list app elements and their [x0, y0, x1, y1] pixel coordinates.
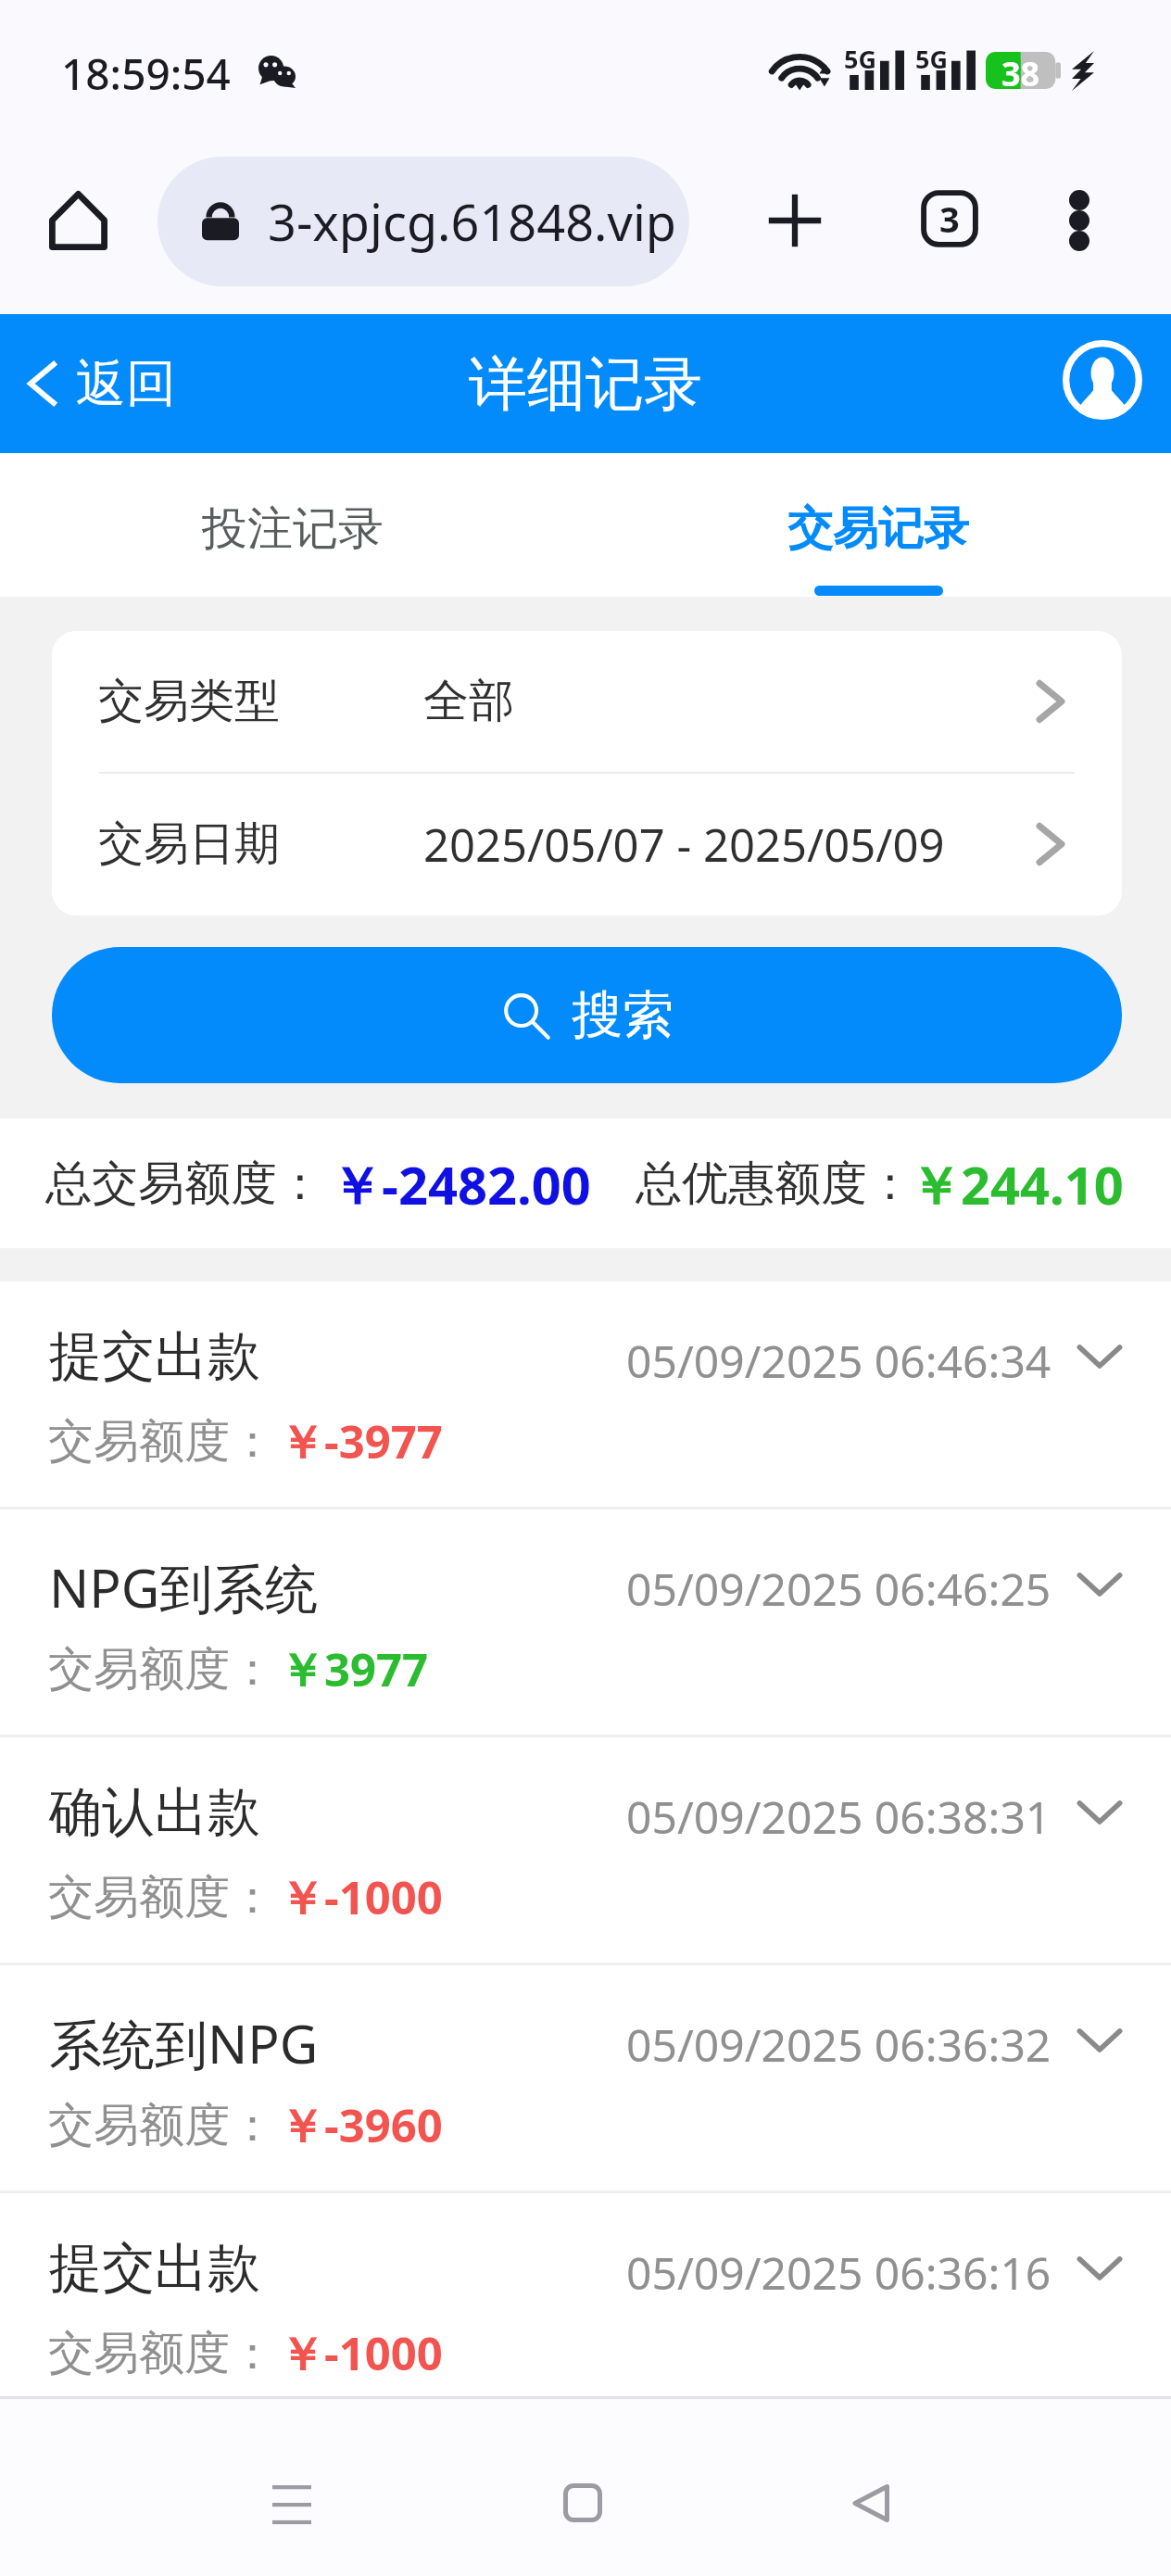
- staticText: NPG到系统: [49, 1551, 319, 1623]
- button[interactable]: 3-xpjcg.61848.vip: [157, 157, 689, 286]
- button[interactable]: Back: [815, 2465, 926, 2541]
- staticText: 交易日期: [98, 815, 280, 873]
- staticText: ￥-3977: [279, 1410, 443, 1472]
- staticText: 交易类型: [98, 673, 280, 730]
- staticText: 2025/05/07 - 2025/05/09: [423, 814, 945, 876]
- staticText: ￥-3960: [279, 2094, 443, 2156]
- staticText: 05/09/2025 06:36:32: [626, 2014, 1051, 2075]
- button[interactable]: 提交出款: [0, 1282, 1171, 1509]
- staticText: 交易额度：: [48, 1641, 275, 1698]
- button[interactable]: Recents: [236, 2465, 347, 2541]
- staticText: ￥-2482.00: [330, 1149, 591, 1219]
- button[interactable]: New tab: [754, 180, 836, 261]
- staticText: ￥-1000: [279, 1866, 443, 1928]
- button[interactable]: Home: [527, 2465, 638, 2541]
- staticText: 05/09/2025 06:46:25: [626, 1559, 1051, 1619]
- staticText: 交易额度：: [48, 2097, 275, 2154]
- button[interactable]: 返回: [0, 314, 195, 453]
- button[interactable]: 交易日期: [52, 774, 1122, 915]
- staticText: 交易额度：: [48, 1869, 275, 1926]
- staticText: 38: [1001, 51, 1040, 88]
- button[interactable]: 确认出款: [0, 1737, 1171, 1965]
- staticText: 详细记录: [469, 347, 702, 421]
- staticText: ￥-1000: [279, 2322, 443, 2384]
- staticText: 交易额度：: [48, 1413, 275, 1471]
- staticText: 全部: [423, 673, 514, 730]
- staticText: 18:59:54: [61, 44, 231, 103]
- button[interactable]: 搜索: [52, 947, 1122, 1083]
- staticText: ￥244.10: [909, 1149, 1124, 1219]
- button[interactable]: 交易类型: [52, 631, 1122, 772]
- staticText: 5G: [844, 42, 876, 76]
- staticText: 提交出款: [49, 1323, 260, 1390]
- staticText: 3-xpjcg.61848.vip: [268, 187, 677, 256]
- staticText: 05/09/2025 06:38:31: [626, 1787, 1051, 1847]
- button[interactable]: NPG到系统: [0, 1509, 1171, 1737]
- button[interactable]: 交易记录: [585, 453, 1171, 597]
- staticText: 交易记录: [787, 500, 969, 558]
- button[interactable]: Home: [41, 183, 115, 258]
- staticText: 搜索: [572, 983, 674, 1047]
- staticText: 投注记录: [202, 500, 384, 558]
- staticText: 总交易额度：: [45, 1155, 323, 1213]
- staticText: 返回: [76, 352, 176, 415]
- staticText: 确认出款: [49, 1779, 260, 1846]
- button[interactable]: More options: [1039, 180, 1120, 261]
- staticText: 3: [939, 195, 960, 243]
- button[interactable]: 系统到NPG: [0, 1965, 1171, 2193]
- staticText: 系统到NPG: [49, 2007, 319, 2079]
- staticText: 05/09/2025 06:46:34: [626, 1331, 1051, 1391]
- button[interactable]: 提交出款: [0, 2193, 1171, 2396]
- staticText: 5G: [915, 42, 948, 76]
- button[interactable]: Tabs: [909, 178, 990, 259]
- staticText: ￥3977: [279, 1638, 429, 1700]
- button[interactable]: 投注记录: [0, 453, 585, 597]
- staticText: 05/09/2025 06:36:16: [626, 2242, 1051, 2303]
- button[interactable]: Account: [1059, 336, 1146, 423]
- staticText: 总优惠额度：: [636, 1155, 913, 1213]
- staticText: 交易额度：: [48, 2325, 275, 2382]
- staticText: 提交出款: [49, 2235, 260, 2302]
